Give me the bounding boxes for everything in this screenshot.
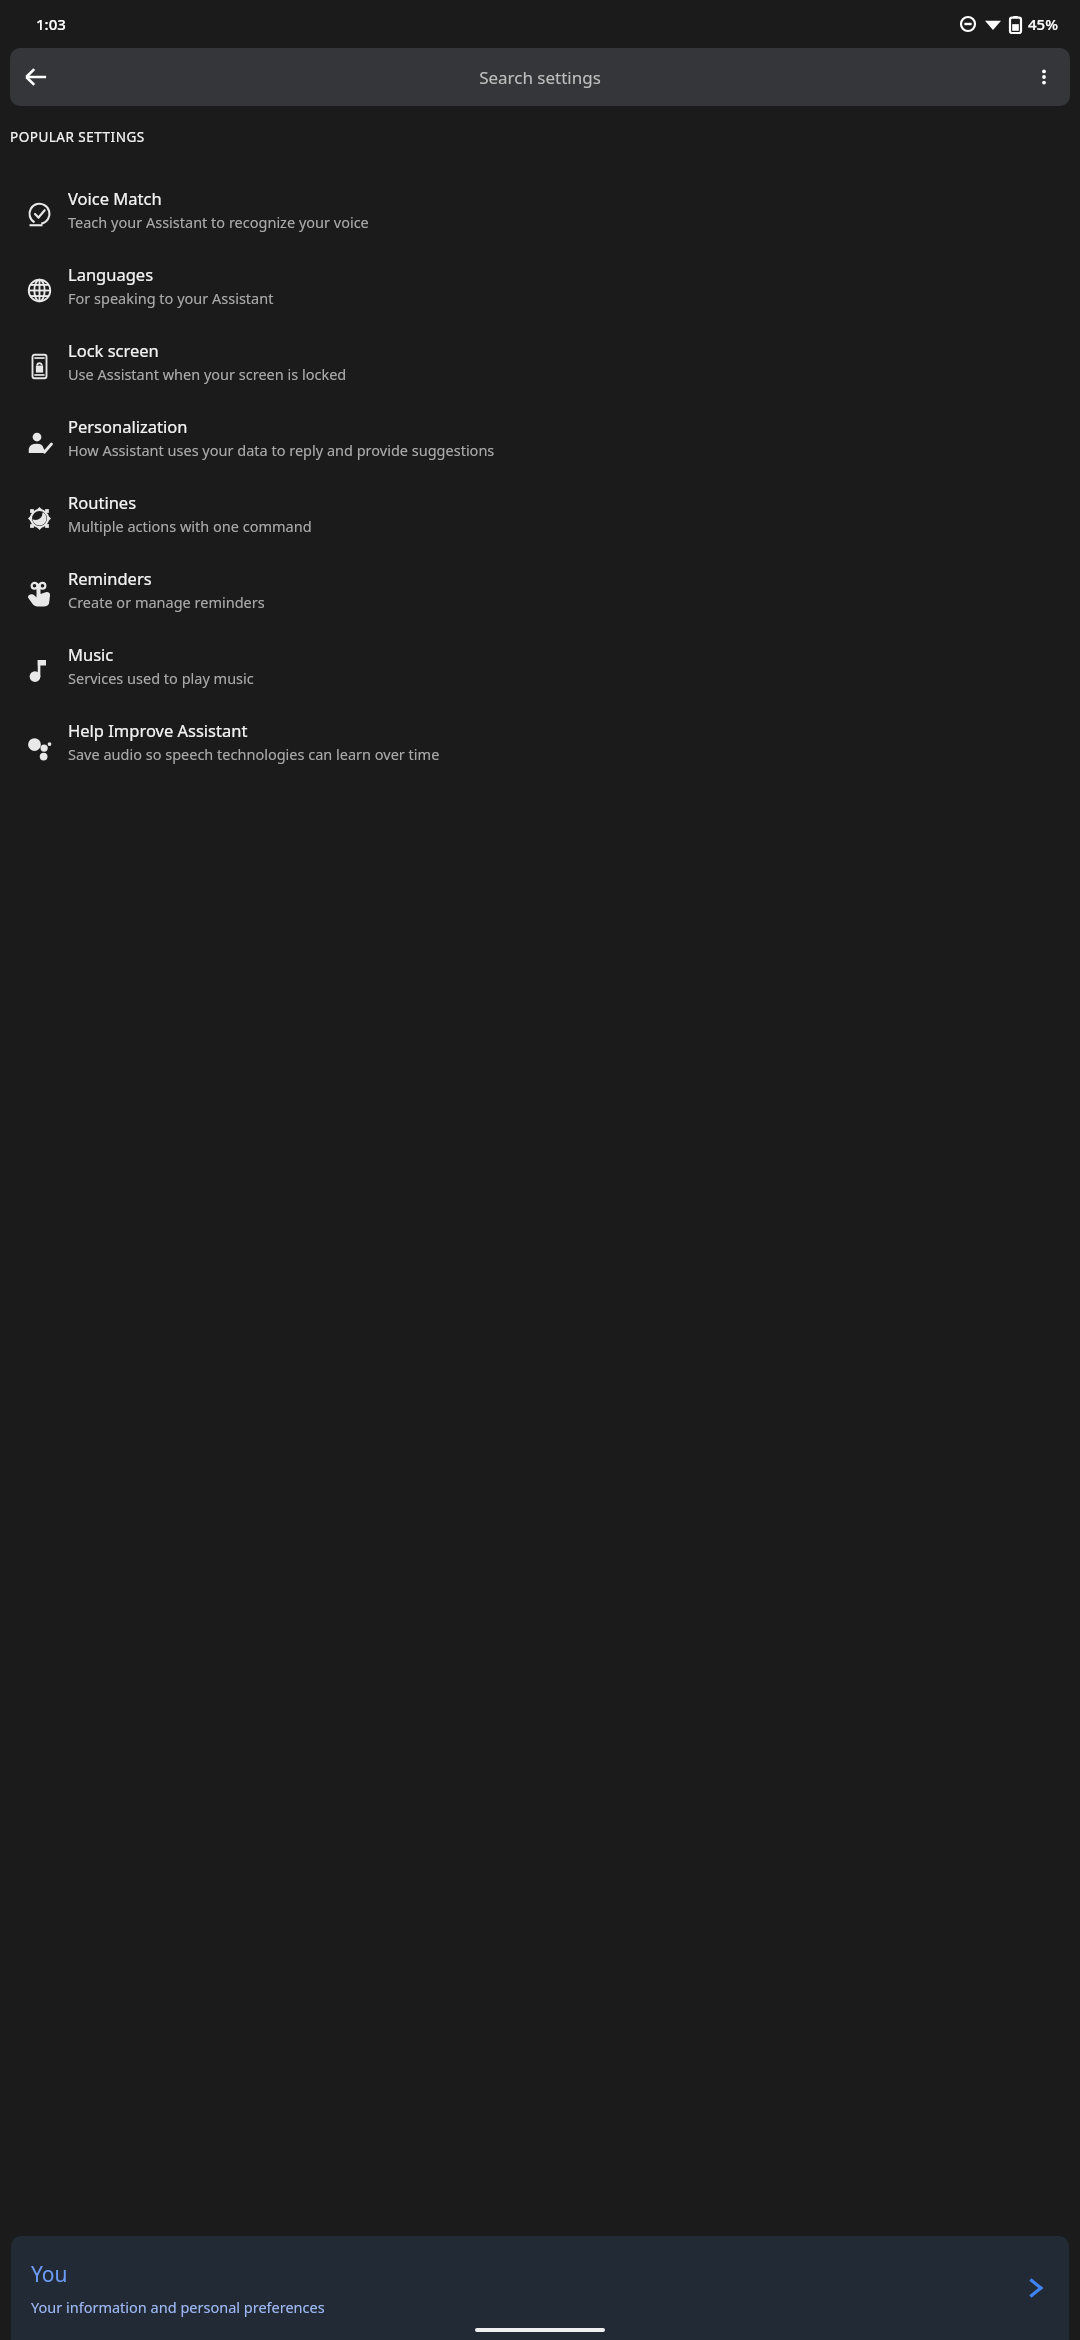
staticText: Personalization: [68, 415, 188, 437]
button[interactable]: More options: [1018, 51, 1070, 103]
staticText: Multiple actions with one command: [68, 516, 312, 536]
button[interactable]: Back: [10, 51, 62, 103]
button[interactable]: Personalization: [0, 404, 1080, 480]
staticText: Routines: [68, 491, 137, 513]
button[interactable]: Routines: [0, 480, 1080, 556]
staticText: Your information and personal preference…: [31, 2297, 325, 2317]
staticText: 45%: [1028, 14, 1058, 34]
staticText: Services used to play music: [68, 668, 254, 688]
staticText: Search settings: [479, 66, 601, 89]
staticText: POPULAR SETTINGS: [10, 128, 145, 146]
staticText: Reminders: [68, 567, 152, 589]
button[interactable]: Voice Match: [0, 176, 1080, 252]
staticText: 1:03: [36, 14, 66, 34]
button[interactable]: Lock screen: [0, 328, 1080, 404]
button[interactable]: Music: [0, 632, 1080, 708]
staticText: Help Improve Assistant: [68, 719, 248, 741]
button[interactable]: Languages: [0, 252, 1080, 328]
staticText: You: [31, 2260, 68, 2289]
staticText: Voice Match: [68, 187, 162, 209]
staticText: Lock screen: [68, 339, 159, 361]
staticText: How Assistant uses your data to reply an…: [68, 440, 495, 460]
staticText: Create or manage reminders: [68, 592, 265, 612]
button[interactable]: You: [11, 2236, 1069, 2340]
staticText: Music: [68, 643, 114, 665]
staticText: Save audio so speech technologies can le…: [68, 744, 440, 764]
staticText: Languages: [68, 263, 154, 285]
staticText: Use Assistant when your screen is locked: [68, 364, 347, 384]
button[interactable]: Reminders: [0, 556, 1080, 632]
staticText: Teach your Assistant to recognize your v…: [68, 212, 369, 232]
button[interactable]: Help Improve Assistant: [0, 708, 1080, 784]
staticText: For speaking to your Assistant: [68, 288, 274, 308]
